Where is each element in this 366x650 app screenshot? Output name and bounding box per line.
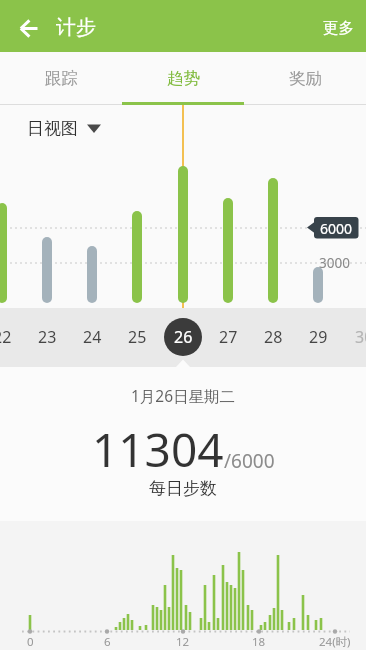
staticText: 26 [174, 326, 193, 348]
staticText: 0 [27, 634, 34, 650]
staticText: 11304 [92, 418, 224, 470]
staticText: 日视图 [27, 118, 78, 139]
button[interactable]: 28 [251, 325, 295, 349]
staticText: 25 [128, 326, 147, 348]
button[interactable]: 26 [164, 318, 202, 356]
staticText: 6 [104, 634, 111, 650]
staticText: 奖励 [289, 68, 322, 89]
button[interactable]: 29 [296, 325, 340, 349]
staticText: 24 [83, 326, 102, 348]
staticText: 1月26日星期二 [131, 385, 236, 406]
button[interactable]: 27 [206, 325, 250, 349]
staticText: 24(时) [319, 634, 351, 650]
staticText: 6000 [320, 219, 353, 238]
staticText: 12 [176, 634, 190, 650]
staticText: 趋势 [167, 68, 200, 89]
button[interactable] [0, 0, 56, 52]
staticText: 29 [309, 326, 328, 348]
staticText: 每日步数 [149, 478, 217, 499]
staticText: 22 [0, 326, 12, 348]
staticText: 计步 [56, 15, 96, 40]
button[interactable]: 奖励 [244, 52, 366, 104]
staticText: 跟踪 [45, 68, 78, 89]
staticText: /6000 [224, 448, 275, 474]
button[interactable]: 跟踪 [0, 52, 122, 104]
button[interactable]: 24 [70, 325, 114, 349]
staticText: 28 [264, 326, 283, 348]
button[interactable]: 更多 [310, 2, 366, 54]
staticText: 30 [355, 326, 366, 348]
button[interactable]: 22 [0, 325, 24, 349]
button[interactable]: 23 [25, 325, 69, 349]
staticText: 3000 [319, 254, 350, 272]
staticText: 27 [219, 326, 238, 348]
staticText: 23 [38, 326, 57, 348]
button[interactable]: 趋势 [122, 52, 244, 104]
staticText: 更多 [323, 18, 354, 38]
button[interactable]: 日视图 [14, 113, 114, 143]
button[interactable]: 25 [115, 325, 159, 349]
staticText: 18 [252, 634, 266, 650]
